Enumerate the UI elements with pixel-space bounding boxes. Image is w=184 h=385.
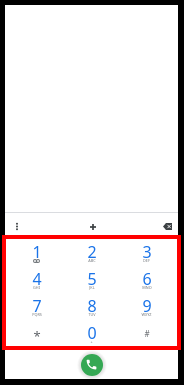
staticText: TUV (88, 312, 96, 317)
button[interactable]: 6 (119, 268, 174, 295)
staticText: DEF (143, 258, 150, 263)
staticText: 5 (87, 268, 97, 290)
staticText: * (33, 327, 41, 345)
staticText: PQRS (32, 312, 42, 317)
button[interactable]: 1 (9, 241, 64, 268)
button[interactable]: Call (81, 354, 103, 376)
staticText: 6 (142, 268, 152, 290)
staticText: MNO (142, 285, 152, 290)
staticText: + (90, 339, 93, 344)
staticText: 7 (32, 295, 42, 317)
button[interactable]: More options (5, 213, 29, 235)
staticText: 4 (32, 268, 42, 290)
staticText: 0 (87, 322, 97, 344)
button[interactable]: 4 (9, 268, 64, 295)
button[interactable]: * (9, 322, 64, 349)
button[interactable]: Backspace (156, 213, 178, 235)
staticText: 9 (142, 295, 152, 317)
staticText: ABC (88, 258, 96, 263)
button[interactable]: 5 (64, 268, 119, 295)
button[interactable]: Add to contacts (29, 213, 156, 235)
button[interactable]: 8 (64, 295, 119, 322)
staticText: 3 (142, 241, 152, 263)
staticText: JKL (89, 285, 95, 290)
button[interactable]: # (119, 322, 174, 349)
staticText: # (144, 328, 150, 339)
button[interactable]: 9 (119, 295, 174, 322)
staticText: WXYZ (141, 312, 152, 317)
button[interactable]: 0 (64, 322, 119, 349)
button[interactable]: 7 (9, 295, 64, 322)
staticText: 1 (32, 241, 42, 263)
button[interactable]: 2 (64, 241, 119, 268)
staticText: 8 (87, 295, 97, 317)
button[interactable]: 3 (119, 241, 174, 268)
staticText: 2 (87, 241, 97, 263)
staticText: GHI (33, 285, 40, 290)
